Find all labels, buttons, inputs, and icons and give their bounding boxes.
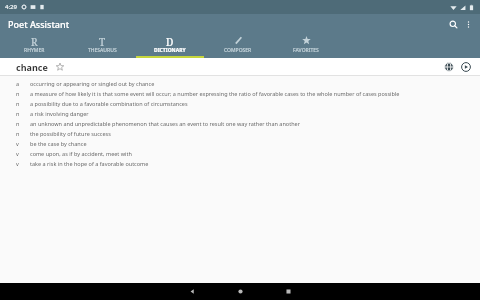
staticText: RHYMER xyxy=(24,47,45,54)
button[interactable]: v xyxy=(0,140,480,147)
staticText: T xyxy=(99,35,106,46)
button[interactable]: n xyxy=(0,100,480,107)
button[interactable]: Open in web browser xyxy=(441,59,456,74)
button[interactable]: Home xyxy=(225,283,255,300)
staticText: an unknown and unpredictable phenomenon … xyxy=(30,120,300,127)
staticText: n xyxy=(16,130,20,137)
staticText: a possibility due to a favorable combina… xyxy=(30,100,188,107)
button[interactable]: n xyxy=(0,90,480,97)
button[interactable]: Search xyxy=(445,16,461,32)
staticText: occurring or appearing or singled out by… xyxy=(30,80,155,87)
staticText: v xyxy=(16,160,19,167)
staticText: DICTIONARY xyxy=(154,47,186,54)
staticText: n xyxy=(16,120,20,127)
staticText: D xyxy=(166,35,174,46)
staticText: a xyxy=(16,80,20,87)
button[interactable]: FAVORITES xyxy=(272,33,340,58)
staticText: R xyxy=(31,35,38,46)
button[interactable]: v xyxy=(0,150,480,157)
staticText: be the case by chance xyxy=(30,140,87,147)
staticText: come upon, as if by accident, meet with xyxy=(30,150,132,157)
button[interactable]: Recent apps xyxy=(273,283,303,300)
button[interactable]: Add to favorites xyxy=(53,60,66,73)
staticText: COMPOSER xyxy=(224,47,252,54)
staticText: a measure of how likely it is that some … xyxy=(30,90,400,97)
staticText: n xyxy=(16,110,20,117)
button[interactable]: Play pronunciation xyxy=(458,59,473,74)
staticText: THESAURUS xyxy=(88,47,117,54)
button[interactable]: v xyxy=(0,160,480,167)
staticText: Poet Assistant xyxy=(8,18,70,30)
button[interactable]: n xyxy=(0,130,480,137)
staticText: chance xyxy=(16,61,48,73)
button[interactable]: More options xyxy=(461,17,475,31)
button[interactable]: T xyxy=(68,33,136,58)
staticText: n xyxy=(16,100,20,107)
staticText: FAVORITES xyxy=(293,47,319,54)
staticText: 4:29 xyxy=(5,3,17,11)
button[interactable]: n xyxy=(0,120,480,127)
button[interactable]: D xyxy=(136,33,204,58)
staticText: n xyxy=(16,90,20,97)
staticText: take a risk in the hope of a favorable o… xyxy=(30,160,149,167)
button[interactable]: Back xyxy=(177,283,207,300)
button[interactable]: a xyxy=(0,80,480,87)
staticText: a risk involving danger xyxy=(30,110,89,117)
staticText: v xyxy=(16,150,19,157)
button[interactable]: n xyxy=(0,110,480,117)
staticText: v xyxy=(16,140,19,147)
staticText: the possibility of future success xyxy=(30,130,111,137)
button[interactable]: COMPOSER xyxy=(204,33,272,58)
button[interactable]: R xyxy=(0,33,68,58)
